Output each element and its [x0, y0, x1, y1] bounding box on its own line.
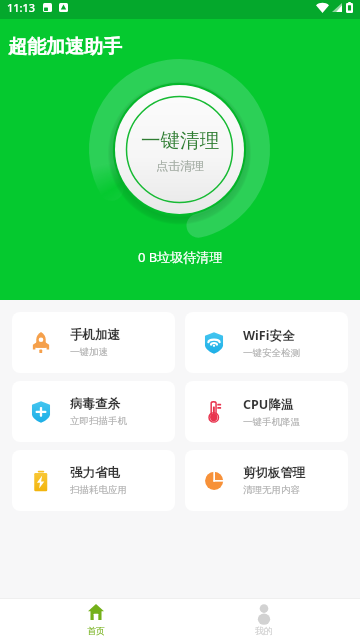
button[interactable]: 一键清理: [115, 85, 244, 214]
button[interactable]: 强力省电: [12, 450, 175, 511]
button[interactable]: 首页: [12, 599, 180, 640]
staticText: 11:13: [7, 0, 36, 15]
staticText: 强力省电: [70, 465, 120, 481]
button[interactable]: 剪切板管理: [185, 450, 348, 511]
staticText: WiFi安全: [243, 327, 295, 344]
button[interactable]: 病毒查杀: [12, 381, 175, 442]
staticText: 一键加速: [70, 346, 108, 358]
button[interactable]: CPU降温: [185, 381, 348, 442]
staticText: 0 B垃圾待清理: [138, 248, 223, 266]
staticText: 我的: [255, 625, 273, 636]
staticText: 扫描耗电应用: [70, 484, 127, 496]
staticText: 立即扫描手机: [70, 415, 127, 427]
staticText: 一键手机降温: [243, 416, 300, 428]
other: 首页: [88, 604, 104, 620]
button[interactable]: 我的: [180, 599, 348, 640]
staticText: 首页: [87, 625, 105, 636]
staticText: CPU降温: [243, 396, 294, 413]
staticText: 一键清理: [141, 128, 219, 153]
staticText: 超能加速助手: [8, 35, 122, 59]
staticText: 手机加速: [70, 327, 120, 343]
staticText: 病毒查杀: [70, 396, 120, 412]
other: 我的: [256, 604, 272, 620]
button[interactable]: WiFi安全: [185, 312, 348, 373]
staticText: 一键安全检测: [243, 347, 300, 359]
button[interactable]: 手机加速: [12, 312, 175, 373]
staticText: 剪切板管理: [243, 465, 306, 481]
staticText: 清理无用内容: [243, 484, 300, 496]
staticText: 点击清理: [156, 158, 204, 173]
